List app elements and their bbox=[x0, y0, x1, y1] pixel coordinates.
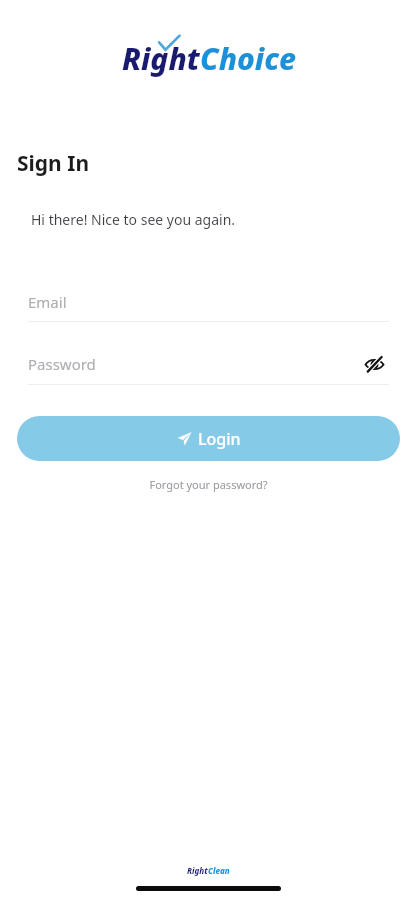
staticText: Right bbox=[187, 865, 208, 876]
button[interactable]: Email bbox=[28, 288, 389, 322]
staticText: Sign In bbox=[17, 149, 90, 178]
staticText: Email bbox=[28, 292, 67, 312]
staticText: Login bbox=[198, 428, 241, 450]
staticText: Clean bbox=[208, 865, 230, 876]
staticText: Choice bbox=[200, 38, 296, 79]
staticText: Right bbox=[122, 38, 200, 79]
button[interactable]: Show password bbox=[359, 349, 389, 379]
button[interactable]: Password bbox=[28, 348, 389, 380]
staticText: Hi there! Nice to see you again. bbox=[31, 210, 236, 229]
button[interactable]: Login bbox=[17, 416, 400, 461]
staticText: Password bbox=[28, 354, 359, 374]
button[interactable]: Forgot your password? bbox=[143, 475, 274, 494]
